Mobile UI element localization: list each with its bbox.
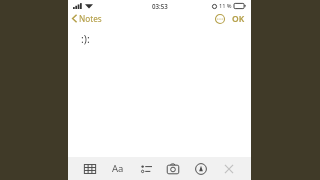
staticText: 11 %	[219, 2, 232, 10]
button[interactable]: Camera	[165, 161, 181, 177]
button[interactable]: Insert table	[82, 161, 98, 177]
staticText: OK	[232, 13, 245, 24]
staticText: 03:53	[152, 2, 168, 10]
button[interactable]: Close	[221, 161, 237, 177]
button[interactable]: OK	[230, 11, 247, 26]
button[interactable]: Checklist	[138, 161, 154, 177]
button[interactable]: Notes	[68, 11, 108, 26]
staticText: Notes	[79, 13, 102, 24]
button[interactable]: Markup	[193, 161, 209, 177]
button[interactable]: Text format	[110, 160, 126, 177]
staticText: :):	[81, 32, 90, 46]
button[interactable]: :):	[68, 26, 251, 157]
staticText: Aa	[112, 162, 124, 175]
button[interactable]: More options	[213, 12, 227, 26]
